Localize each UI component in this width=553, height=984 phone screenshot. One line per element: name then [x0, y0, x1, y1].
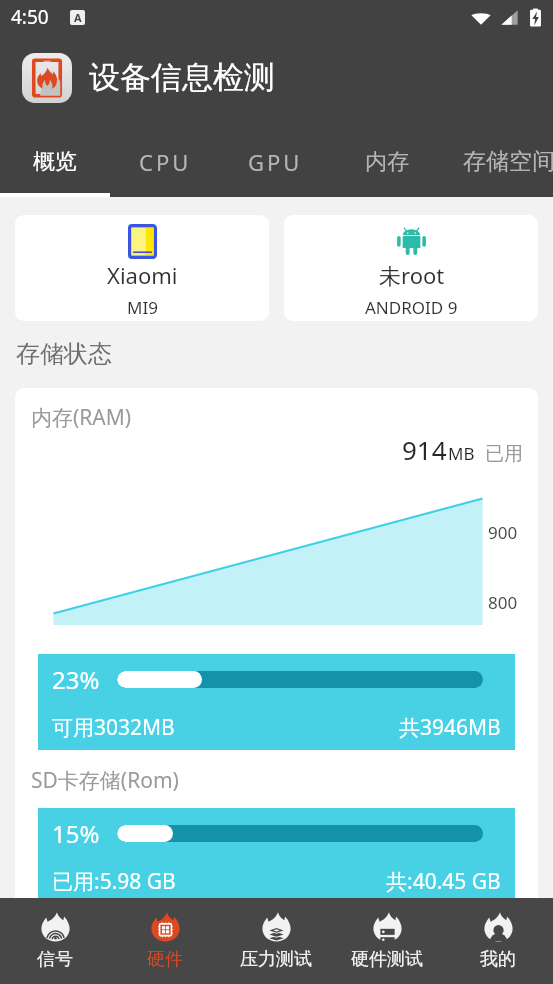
- staticText: 共3946MB: [399, 713, 501, 742]
- staticText: 信号: [37, 948, 73, 971]
- staticText: SD卡存储(Rom): [31, 766, 179, 795]
- button[interactable]: 未root: [284, 215, 538, 321]
- staticText: 内存: [365, 148, 409, 176]
- staticText: CPU: [139, 147, 192, 177]
- staticText: 已用:5.98 GB: [52, 867, 176, 896]
- button[interactable]: GPU: [220, 121, 331, 197]
- staticText: 未root: [379, 260, 445, 290]
- button[interactable]: 压力测试: [220, 898, 331, 984]
- staticText: 4:50: [11, 4, 49, 30]
- button[interactable]: 我的: [442, 898, 553, 984]
- button[interactable]: 内存: [331, 121, 442, 197]
- button[interactable]: Xiaomi: [15, 215, 269, 321]
- button[interactable]: 概览: [0, 121, 110, 197]
- staticText: 存储状态: [16, 339, 112, 369]
- staticText: 设备信息检测: [89, 58, 275, 97]
- staticText: 已用: [485, 442, 523, 466]
- staticText: GPU: [248, 147, 303, 177]
- staticText: 914: [402, 432, 447, 467]
- staticText: 压力测试: [240, 948, 312, 971]
- staticText: 15%: [52, 817, 100, 850]
- staticText: 硬件测试: [351, 948, 423, 971]
- staticText: 可用3032MB: [52, 713, 175, 742]
- button[interactable]: 信号: [0, 898, 110, 984]
- staticText: ANDROID 9: [365, 296, 458, 319]
- staticText: 存储空间: [463, 147, 553, 176]
- staticText: MB: [448, 442, 475, 465]
- button[interactable]: 硬件: [110, 898, 220, 984]
- staticText: 共:40.45 GB: [386, 867, 501, 896]
- staticText: 800: [488, 591, 518, 614]
- staticText: MI9: [127, 296, 158, 319]
- staticText: Xiaomi: [107, 260, 178, 290]
- staticText: 我的: [480, 948, 516, 971]
- button[interactable]: 存储空间: [442, 121, 553, 197]
- staticText: 900: [488, 521, 518, 544]
- button[interactable]: CPU: [110, 121, 220, 197]
- button[interactable]: 硬件测试: [331, 898, 442, 984]
- staticText: 23%: [52, 663, 100, 696]
- staticText: 概览: [33, 148, 77, 176]
- staticText: A: [74, 10, 82, 25]
- staticText: 硬件: [147, 948, 183, 971]
- staticText: 内存(RAM): [31, 403, 132, 432]
